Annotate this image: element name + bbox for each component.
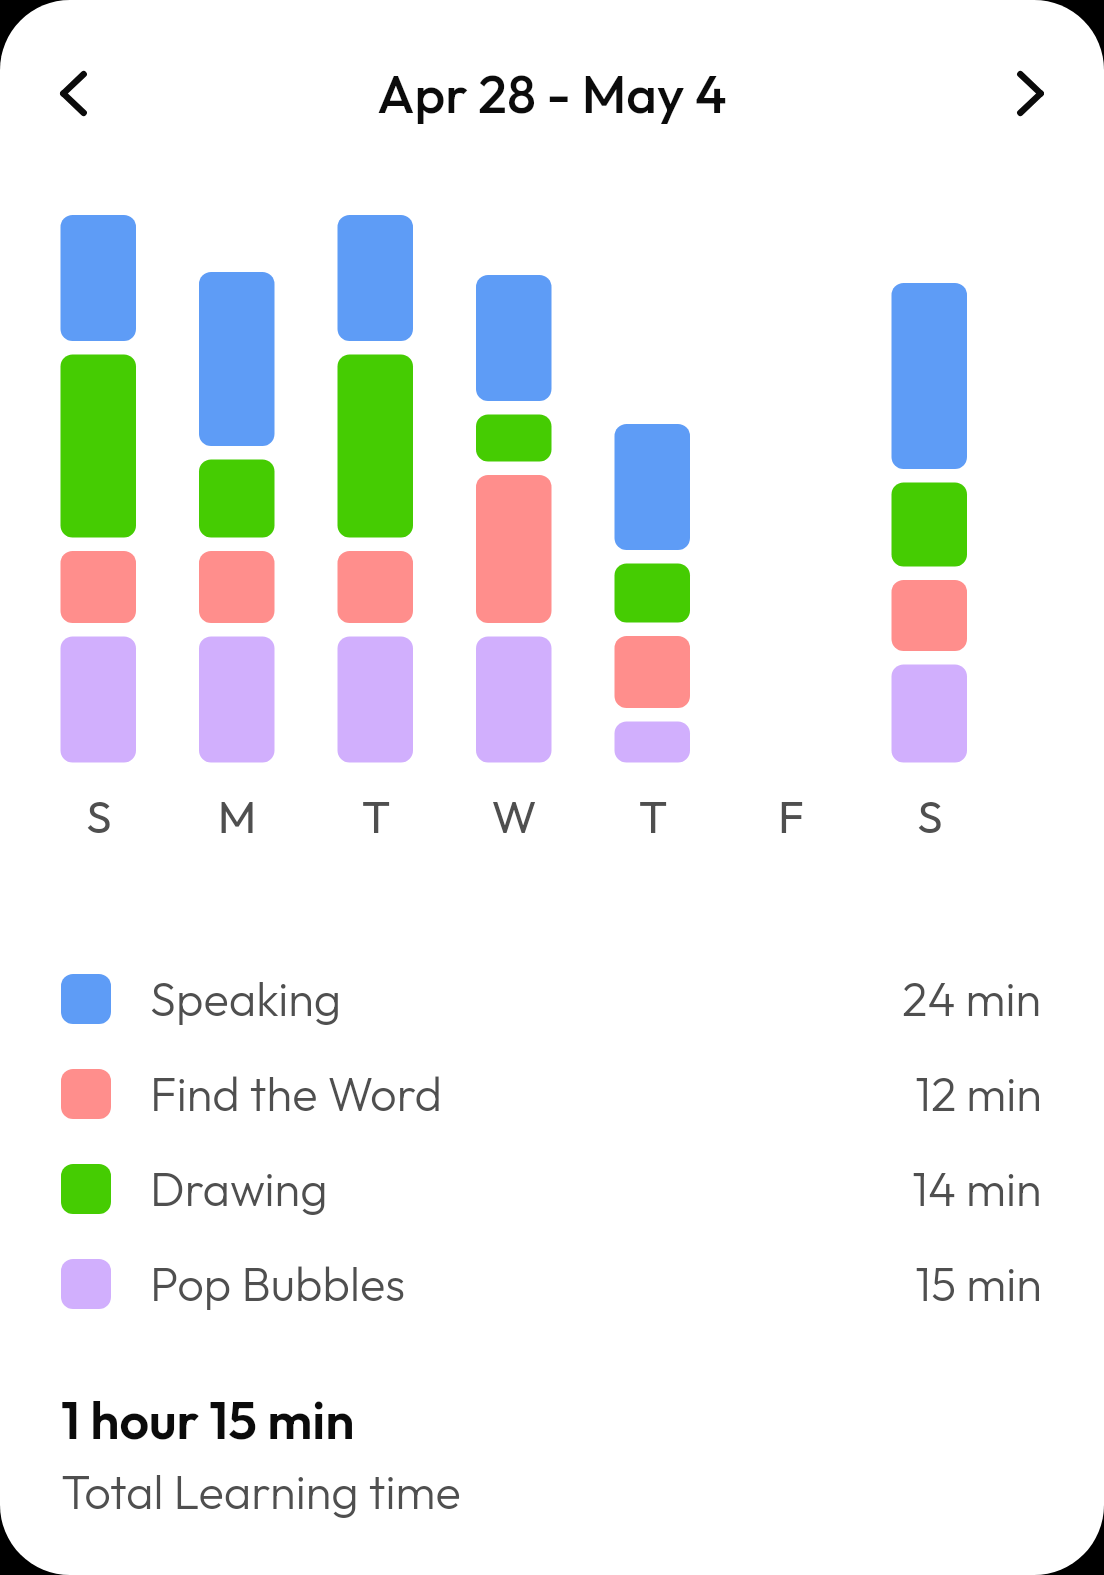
staticText: 14 min (912, 1159, 1042, 1218)
staticText: 15 min (915, 1254, 1042, 1313)
button[interactable]: Speaking (0, 951, 1104, 1046)
staticText: Total Learning time (61, 1462, 461, 1521)
staticText: Drawing (150, 1159, 328, 1218)
button[interactable]: Next week (1004, 55, 1057, 132)
staticText: Speaking (150, 969, 342, 1028)
staticText: 12 min (915, 1064, 1042, 1123)
button[interactable]: Friday (740, 196, 844, 853)
staticText: F (753, 787, 829, 845)
staticText: W (476, 787, 552, 845)
staticText: Find the Word (150, 1064, 443, 1123)
button[interactable]: Pop Bubbles (0, 1236, 1104, 1331)
button[interactable]: Drawing (0, 1141, 1104, 1236)
staticText: M (199, 787, 275, 845)
button[interactable]: Previous week (47, 55, 100, 132)
button[interactable]: Tuesday (324, 196, 428, 853)
staticText: 24 min (902, 969, 1042, 1028)
button[interactable]: Saturday (878, 196, 982, 853)
staticText: T (338, 787, 414, 845)
staticText: S (892, 787, 968, 845)
staticText: T (615, 787, 691, 845)
button[interactable]: Sunday (47, 196, 151, 853)
staticText: 1 hour 15 min (61, 1387, 355, 1453)
button[interactable]: Thursday (601, 196, 705, 853)
staticText: S (61, 787, 137, 845)
button[interactable]: Monday (186, 196, 290, 853)
button[interactable]: Find the Word (0, 1046, 1104, 1141)
staticText: Pop Bubbles (150, 1254, 406, 1313)
staticText: Apr 28 - May 4 (0, 60, 1104, 127)
button[interactable]: Wednesday (463, 196, 567, 853)
